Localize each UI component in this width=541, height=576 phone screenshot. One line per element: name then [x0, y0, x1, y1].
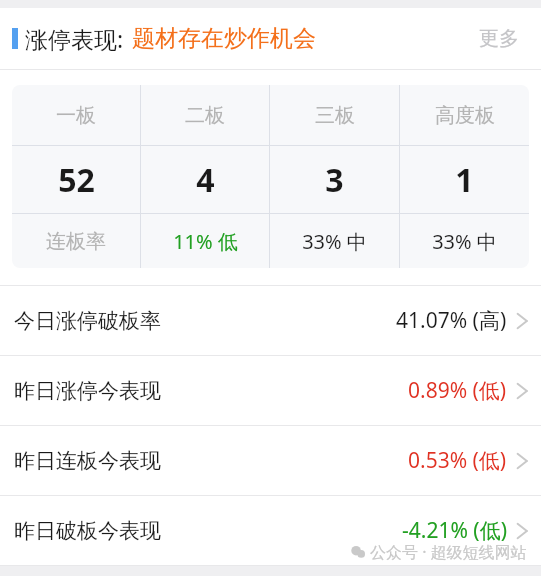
- staticText: 11% 低: [173, 228, 238, 255]
- staticText: 二板: [185, 103, 225, 128]
- staticText: 41.07% (高): [396, 306, 507, 335]
- staticText: 昨日破板今表现: [14, 518, 161, 544]
- staticText: 三板: [315, 103, 355, 128]
- staticText: 0.53% (低): [408, 446, 507, 475]
- staticText: 昨日涨停今表现: [14, 378, 161, 404]
- staticText: 题材存在炒作机会: [132, 24, 316, 53]
- button[interactable]: 昨日连板今表现: [0, 426, 541, 495]
- staticText: 4: [196, 158, 215, 202]
- button[interactable]: 昨日破板今表现: [0, 496, 541, 565]
- staticText: 0.89% (低): [408, 376, 507, 405]
- staticText: 一板: [56, 103, 96, 128]
- button[interactable]: 更多: [475, 22, 523, 55]
- staticText: 更多: [479, 26, 519, 51]
- staticText: 连板率: [46, 229, 106, 254]
- staticText: 52: [58, 158, 95, 202]
- staticText: -4.21% (低): [402, 516, 507, 545]
- staticText: 昨日连板今表现: [14, 448, 161, 474]
- staticText: 33% 中: [302, 228, 367, 255]
- staticText: 高度板: [435, 103, 495, 128]
- button[interactable]: 今日涨停破板率: [0, 286, 541, 355]
- button[interactable]: 昨日涨停今表现: [0, 356, 541, 425]
- staticText: 今日涨停破板率: [14, 308, 161, 334]
- staticText: 33% 中: [432, 228, 497, 255]
- staticText: 涨停表现:: [25, 23, 124, 54]
- staticText: 1: [455, 158, 474, 202]
- staticText: 3: [325, 158, 344, 202]
- staticText: 公众号 · 超级短线网站: [370, 541, 527, 563]
